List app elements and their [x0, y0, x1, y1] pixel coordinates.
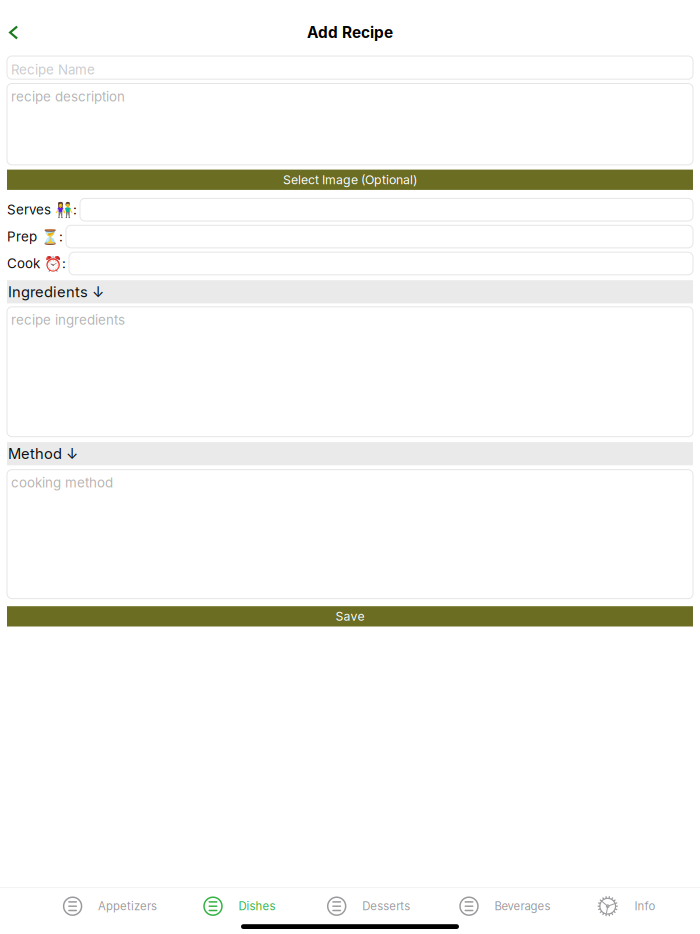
button[interactable]: Appetizers	[64, 888, 157, 924]
staticText: :	[59, 228, 63, 245]
staticText: ⏰	[44, 255, 62, 272]
staticText: cooking method	[11, 475, 113, 491]
staticText: Cook	[7, 255, 40, 271]
staticText: Desserts	[362, 899, 410, 913]
button[interactable]: Back	[0, 6, 32, 50]
button[interactable]: Dishes	[204, 888, 275, 924]
staticText: :	[62, 255, 66, 271]
staticText: ⏳	[41, 228, 59, 245]
button[interactable]: Save	[7, 606, 693, 626]
staticText: Add Recipe	[307, 23, 393, 42]
staticText: recipe description	[11, 88, 125, 105]
button[interactable]: Select Image (Optional)	[7, 170, 693, 190]
staticText: Dishes	[238, 899, 275, 913]
staticText: Prep	[7, 228, 37, 245]
staticText: :	[73, 202, 77, 218]
staticText: Info	[634, 899, 655, 913]
staticText: Serves	[7, 202, 51, 218]
staticText: Beverages	[494, 899, 550, 913]
button[interactable]: Desserts	[328, 888, 410, 924]
staticText: Appetizers	[98, 899, 157, 913]
button[interactable]: Beverages	[460, 888, 550, 924]
staticText: Ingredients ↓	[8, 283, 104, 301]
button[interactable]: Info	[597, 888, 655, 924]
staticText: Method ↓	[8, 445, 78, 462]
staticText: Recipe Name	[11, 61, 95, 78]
staticText: Save	[335, 609, 364, 624]
staticText: Select Image (Optional)	[283, 172, 417, 187]
staticText: 👫	[55, 201, 73, 218]
staticText: recipe ingredients	[11, 312, 125, 328]
staticText	[40, 255, 44, 271]
